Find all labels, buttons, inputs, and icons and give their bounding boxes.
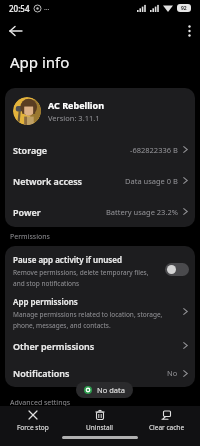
staticText: Battery usage 23.2% — [106, 207, 178, 217]
staticText: 20:54 — [9, 3, 30, 14]
staticText: Clear cache — [149, 423, 185, 432]
button[interactable]: Other permissions — [13, 332, 189, 359]
button[interactable] — [188, 25, 191, 37]
staticText: phone, messages, and contacts. — [13, 321, 111, 330]
staticText: Manage permissions related to location, … — [13, 310, 163, 319]
staticText: Power — [13, 206, 41, 218]
staticText: … — [44, 3, 50, 13]
button[interactable]: Clear cache — [133, 410, 200, 432]
staticText: App permissions — [13, 296, 78, 307]
staticText: Storage — [13, 144, 48, 156]
button[interactable]: Storage — [13, 134, 189, 165]
button[interactable]: Network access — [13, 165, 189, 196]
staticText: Other permissions — [13, 340, 95, 352]
button[interactable]: App permissions — [5, 290, 195, 332]
button[interactable] — [10, 25, 22, 37]
staticText: No data — [97, 385, 125, 395]
staticText: Data usage 0 B — [125, 176, 178, 186]
button[interactable]: Force stop — [0, 410, 66, 432]
staticText: Force stop — [17, 423, 49, 432]
staticText: 92 — [181, 5, 187, 12]
staticText: Remove permissions, delete temporary fil… — [13, 268, 149, 277]
staticText: Uninstall — [86, 423, 113, 432]
staticText: and stop notifications — [13, 279, 80, 288]
staticText: Version: 3.11.1 — [48, 113, 100, 123]
staticText: -682822336 B — [130, 145, 178, 155]
staticText: App info — [10, 52, 70, 72]
button[interactable]: Power — [13, 196, 189, 227]
staticText: Network access — [13, 175, 83, 187]
staticText: Permissions — [10, 232, 50, 242]
button[interactable]: Pause app activity if unused — [5, 248, 195, 290]
staticText: Pause app activity if unused — [13, 254, 122, 265]
button[interactable]: Notifications — [13, 359, 189, 387]
staticText: Notifications — [13, 367, 70, 379]
staticText: No — [167, 368, 178, 378]
staticText: Advanced settings — [10, 398, 71, 408]
staticText: AC Rebellion — [48, 99, 105, 111]
button[interactable]: Uninstall — [66, 410, 133, 432]
